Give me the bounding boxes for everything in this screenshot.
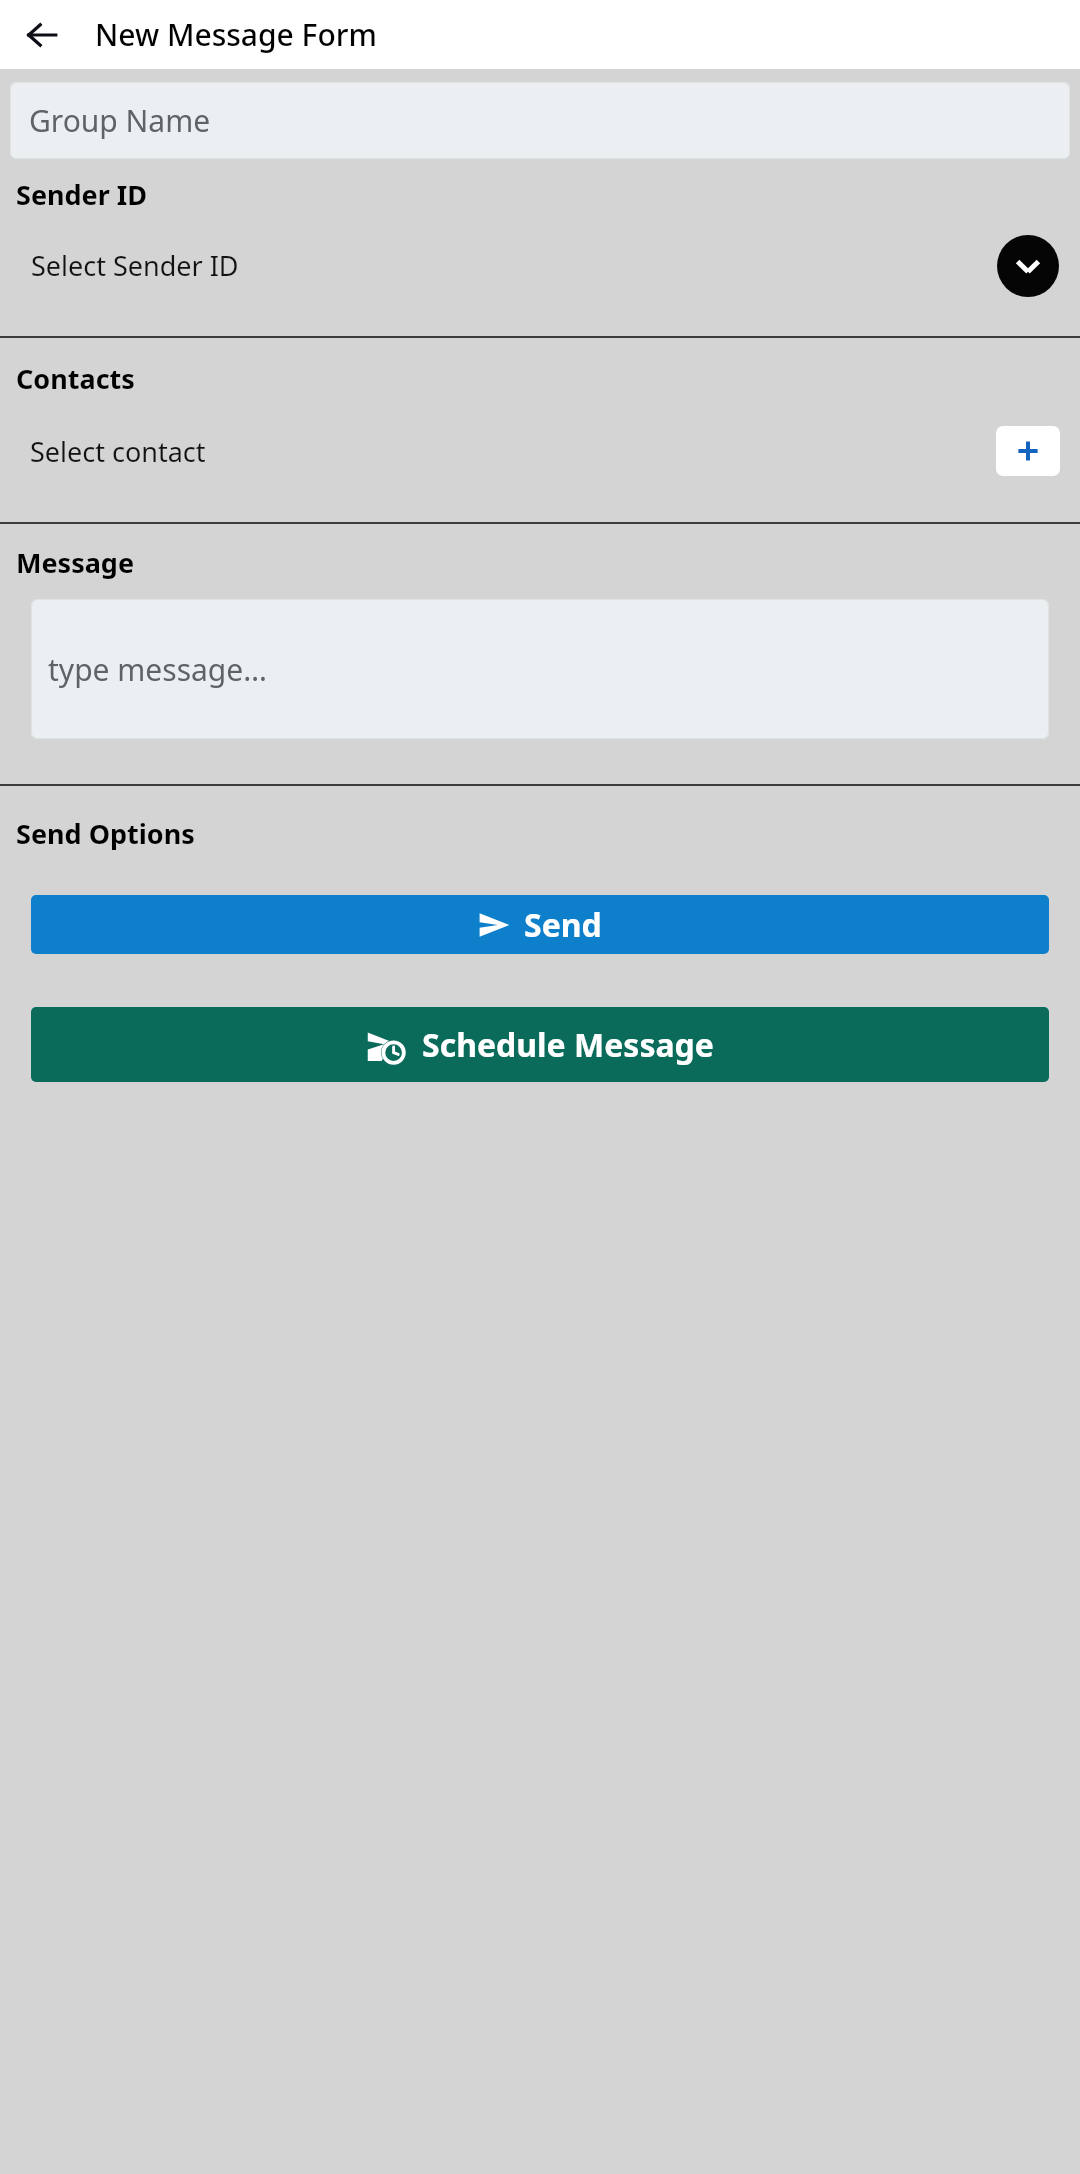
staticText: Select Sender ID xyxy=(31,247,239,284)
button[interactable]: Back xyxy=(14,7,70,63)
button[interactable]: Group Name xyxy=(10,82,1070,159)
staticText: Send Options xyxy=(16,815,195,852)
staticText: Contacts xyxy=(16,360,135,397)
staticText: type message… xyxy=(48,649,267,690)
staticText: Schedule Message xyxy=(422,1023,714,1067)
staticText: Message xyxy=(16,544,135,581)
staticText: Sender ID xyxy=(16,176,148,213)
button[interactable]: Select Sender ID xyxy=(997,235,1059,297)
button[interactable]: Add contact xyxy=(996,426,1060,476)
button[interactable]: type message… xyxy=(31,599,1049,739)
staticText: Select contact xyxy=(30,433,206,470)
button[interactable]: Schedule Message xyxy=(31,1007,1049,1082)
button[interactable]: Send xyxy=(31,895,1049,954)
staticText: Send xyxy=(524,903,602,947)
staticText: New Message Form xyxy=(95,14,377,55)
staticText: Group Name xyxy=(29,100,211,141)
